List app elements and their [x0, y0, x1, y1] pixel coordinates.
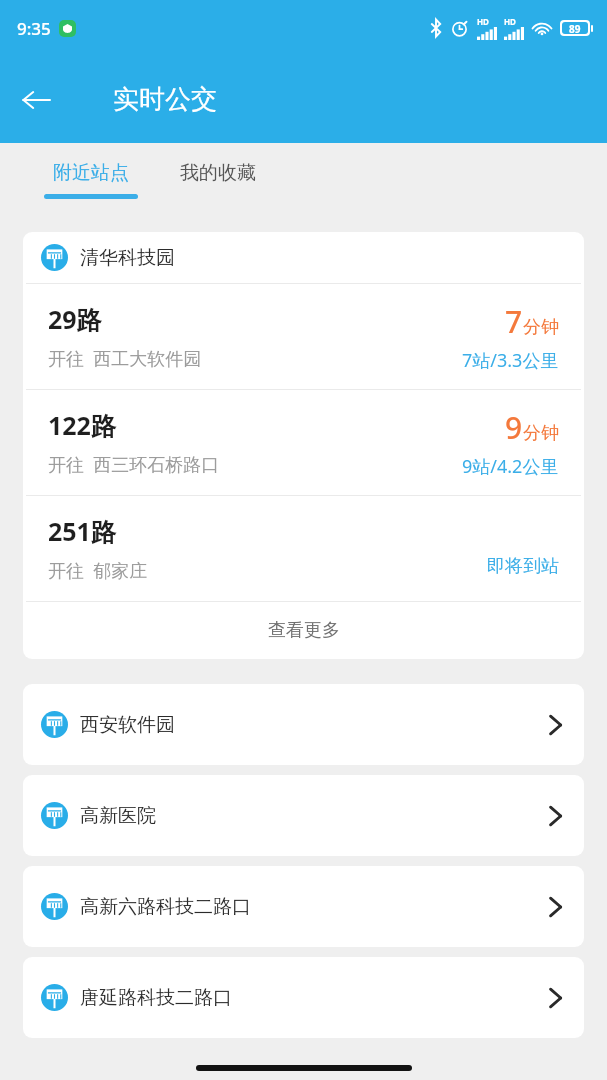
staticText: 7站/3.3公里 — [462, 348, 559, 373]
button[interactable]: 唐延路科技二路口 — [23, 957, 584, 1038]
button[interactable]: 29路 — [23, 284, 584, 389]
staticText: 分钟 — [523, 422, 559, 445]
button[interactable]: 附近站点 — [30, 161, 152, 199]
staticText: 122路 — [48, 408, 116, 442]
staticText: 我的收藏 — [180, 161, 256, 185]
staticText: 开往 西工大软件园 — [48, 346, 202, 371]
button[interactable]: 高新医院 — [23, 775, 584, 856]
staticText: 开往 西三环石桥路口 — [48, 452, 220, 477]
staticText: 高新六路科技二路口 — [80, 895, 549, 919]
staticText: 9站/4.2公里 — [462, 454, 559, 479]
staticText: 开往 郁家庄 — [48, 558, 148, 583]
staticText: 7 — [505, 301, 523, 342]
staticText: 9 — [505, 407, 523, 448]
staticText: 即将到站 — [487, 555, 559, 578]
button[interactable]: 高新六路科技二路口 — [23, 866, 584, 947]
staticText: 分钟 — [523, 316, 559, 339]
staticText: 高新医院 — [80, 804, 549, 828]
staticText: 唐延路科技二路口 — [80, 986, 549, 1010]
staticText: HD — [477, 16, 489, 27]
button[interactable]: 清华科技园 — [23, 232, 584, 283]
staticText: 附近站点 — [53, 161, 129, 185]
button[interactable]: 查看更多 — [23, 602, 584, 659]
staticText: 清华科技园 — [80, 246, 175, 270]
staticText: 实时公交 — [113, 83, 217, 116]
button[interactable]: 西安软件园 — [23, 684, 584, 765]
staticText: 251路 — [48, 514, 116, 548]
staticText: 89 — [569, 22, 581, 34]
staticText: 查看更多 — [268, 619, 340, 642]
button[interactable]: Back — [8, 72, 64, 128]
staticText: 西安软件园 — [80, 713, 549, 737]
button[interactable]: 251路 — [23, 496, 584, 601]
staticText: 9:35 — [17, 17, 51, 40]
staticText: HD — [504, 16, 516, 27]
button[interactable]: 122路 — [23, 390, 584, 495]
button[interactable]: 我的收藏 — [166, 161, 270, 185]
staticText: 29路 — [48, 302, 102, 336]
